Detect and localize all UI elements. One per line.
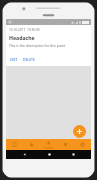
button[interactable]: Favourites (57, 139, 74, 150)
staticText: DELETE (23, 57, 35, 62)
staticText: Reports (44, 146, 54, 150)
staticText: This is the description for this point (9, 43, 66, 48)
button[interactable]: Settings (74, 139, 91, 150)
button[interactable]: Home (42, 150, 56, 159)
button[interactable]: Add note (73, 125, 86, 138)
staticText: 16.10.2017 19:30:00 (9, 28, 40, 32)
button[interactable]: 16.10.2017 19:30:00 (6, 25, 91, 66)
button[interactable]: EDIT (9, 56, 19, 63)
button[interactable]: Alerts (23, 139, 40, 150)
staticText: EDIT (10, 57, 18, 62)
button[interactable]: Reports (40, 139, 57, 150)
button[interactable]: DELETE (22, 56, 36, 63)
button[interactable]: Recent apps (66, 150, 80, 159)
staticText: Headache (9, 34, 35, 41)
button[interactable]: Notes (6, 139, 23, 150)
button[interactable]: Back (17, 150, 31, 159)
